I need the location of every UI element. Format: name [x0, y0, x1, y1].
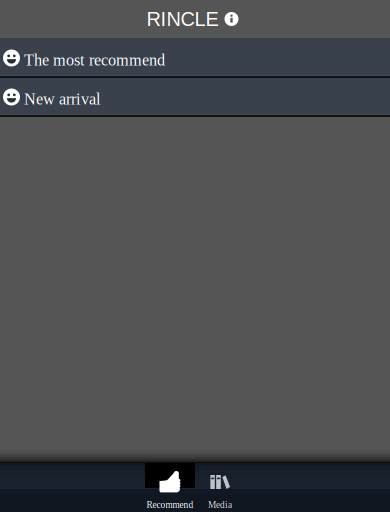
- staticText: New arrival: [24, 90, 101, 108]
- staticText: Media: [208, 500, 232, 510]
- button[interactable]: Recommend: [145, 463, 195, 512]
- button[interactable]: The most recommend: [0, 39, 390, 78]
- staticText: RINCLE: [146, 8, 218, 30]
- button[interactable]: New arrival: [0, 78, 390, 117]
- button[interactable]: Media: [195, 463, 245, 512]
- staticText: Recommend: [146, 500, 193, 510]
- button[interactable]: Info: [224, 12, 238, 26]
- staticText: The most recommend: [24, 51, 165, 69]
